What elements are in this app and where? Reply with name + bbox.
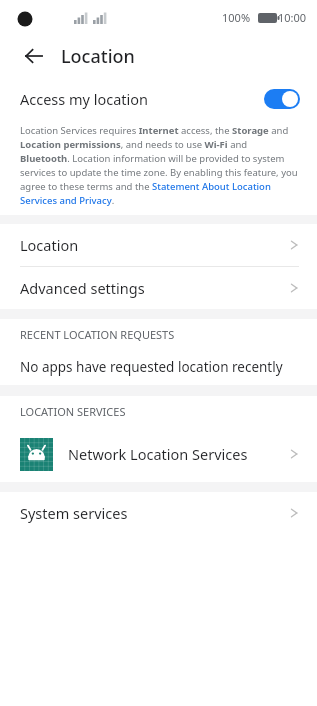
button[interactable]: Network Location Services xyxy=(0,426,317,482)
staticText: LOCATION SERVICES xyxy=(20,404,126,419)
staticText: No apps have requested location recently xyxy=(20,358,283,376)
button[interactable]: System services xyxy=(0,492,317,534)
staticText: Location xyxy=(20,235,79,255)
staticText: Advanced settings xyxy=(20,278,145,298)
button[interactable]: Back xyxy=(19,41,49,71)
button[interactable]: Advanced settings xyxy=(0,267,317,309)
button[interactable]: Location xyxy=(0,224,317,266)
staticText: 100% xyxy=(222,10,251,25)
staticText: RECENT LOCATION REQUESTS xyxy=(20,327,175,342)
staticText: Access my location xyxy=(20,89,149,109)
staticText: 10:00 xyxy=(278,10,307,25)
staticText: Network Location Services xyxy=(68,444,248,464)
staticText: Location Services requires Internet acce… xyxy=(20,124,299,207)
staticText: System services xyxy=(20,503,128,523)
button[interactable]: Access my location xyxy=(0,78,317,120)
staticText: Location xyxy=(61,44,135,69)
